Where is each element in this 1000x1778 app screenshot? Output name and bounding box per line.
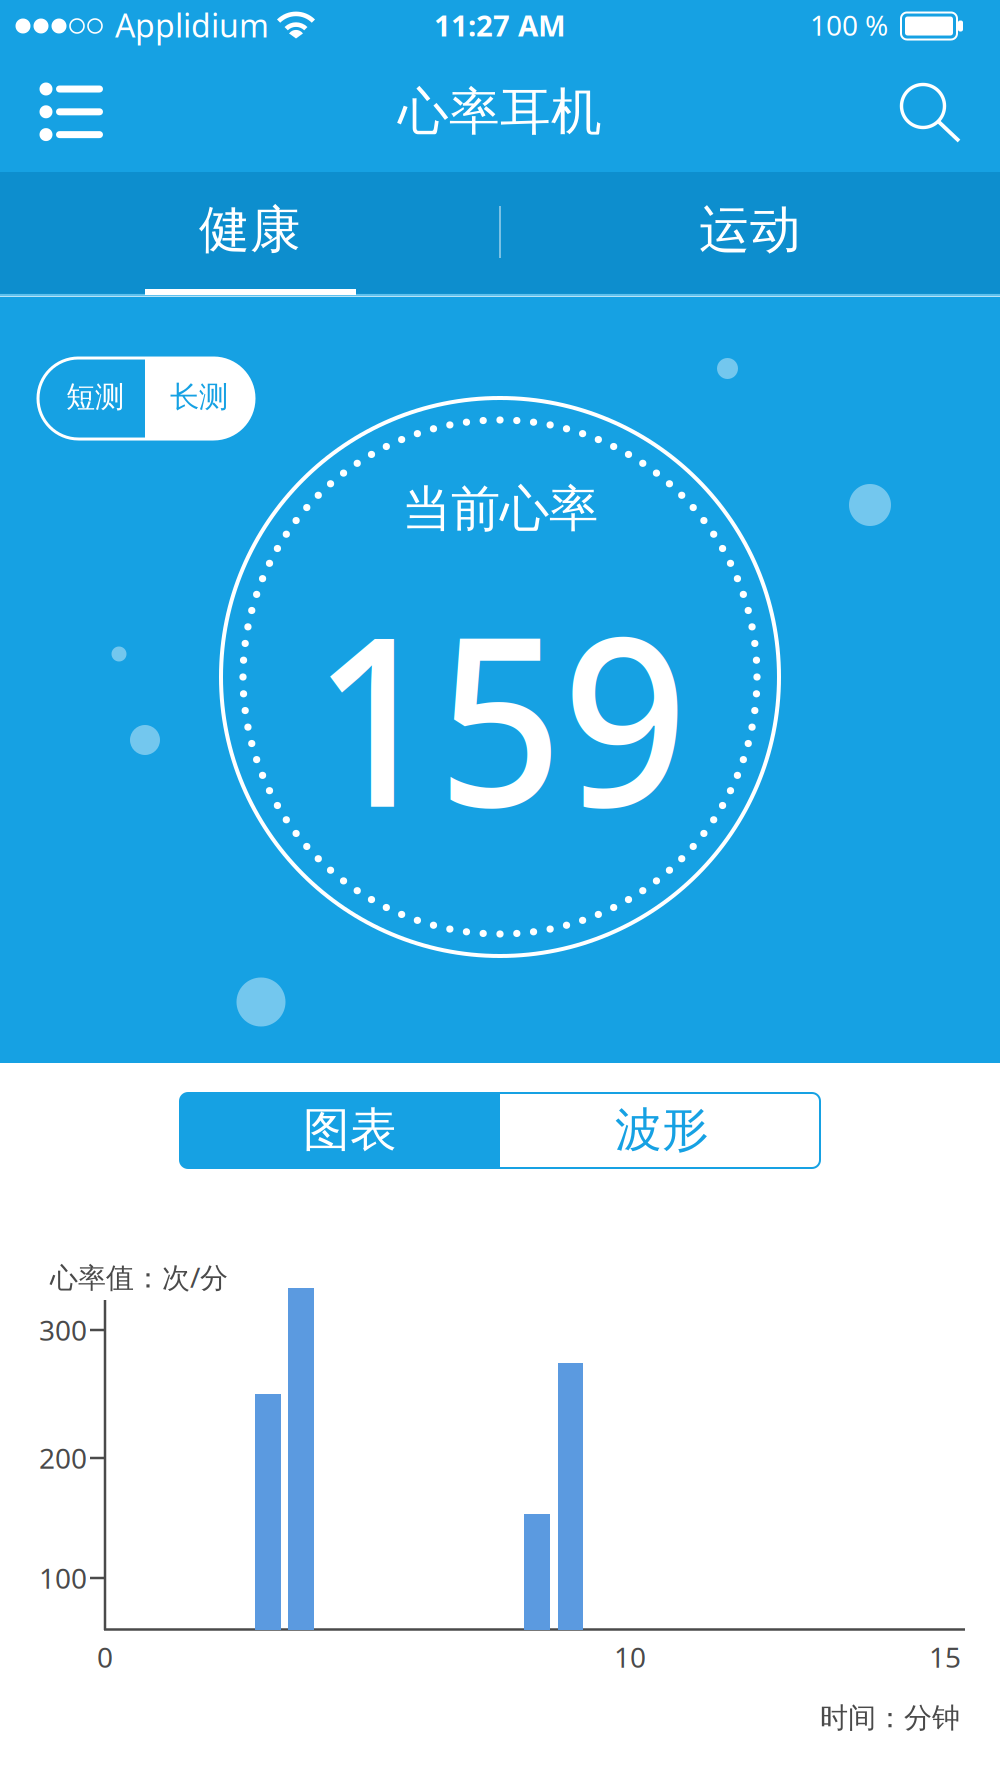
staticText: 健康 <box>199 199 301 261</box>
button[interactable] <box>22 67 122 157</box>
staticText: 波形 <box>615 1101 709 1159</box>
staticText: 心率值：次/分 <box>50 1258 228 1296</box>
staticText: 当前心率 <box>402 479 598 539</box>
staticText: 200 <box>39 1439 87 1477</box>
staticText: 11:27 AM <box>434 5 566 44</box>
staticText: Applidium <box>115 4 269 46</box>
button[interactable]: 运动 <box>510 175 990 285</box>
staticText: 100 % <box>810 6 888 44</box>
staticText: 运动 <box>699 199 801 261</box>
button[interactable]: 图表 <box>0 0 1000 1778</box>
button[interactable]: 波形 <box>502 1092 822 1167</box>
staticText: 100 <box>39 1559 87 1597</box>
staticText: 300 <box>39 1311 87 1349</box>
button[interactable]: 健康 <box>10 175 490 285</box>
staticText: 15 <box>929 1638 961 1676</box>
button[interactable] <box>885 70 965 160</box>
staticText: 时间：分钟 <box>820 1701 960 1735</box>
button[interactable]: 长测 <box>149 356 249 437</box>
staticText: 心率耳机 <box>398 81 602 143</box>
staticText: 0 <box>97 1638 113 1676</box>
staticText: 短测 <box>66 379 124 415</box>
staticText: 长测 <box>170 379 228 415</box>
staticText: 10 <box>614 1638 646 1676</box>
staticText: 159 <box>312 571 687 861</box>
staticText: 图表 <box>303 1101 397 1159</box>
button[interactable]: 短测 <box>0 0 1000 1778</box>
